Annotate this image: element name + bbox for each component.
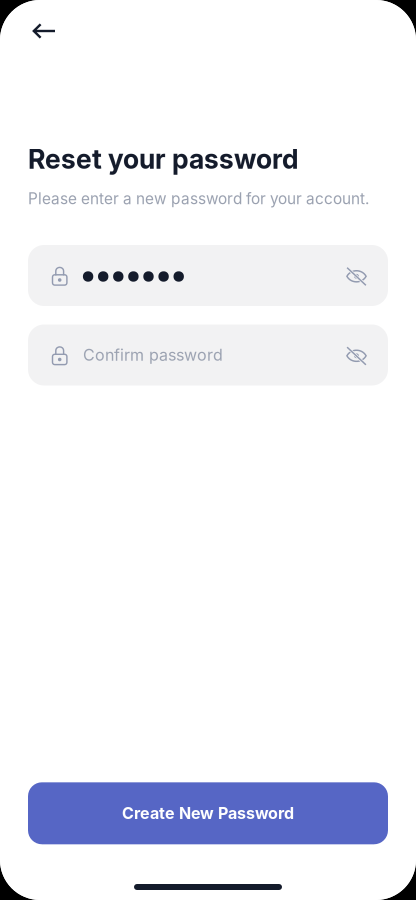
staticText: Please enter a new password for your acc…: [28, 189, 369, 208]
button[interactable]: Confirm password: [28, 324, 388, 385]
staticText: Reset your password: [28, 143, 299, 175]
button[interactable]: New password: [28, 245, 388, 306]
button[interactable]: Show confirm password: [334, 334, 378, 378]
button[interactable]: Back: [21, 9, 67, 53]
staticText: Confirm password: [83, 345, 223, 365]
staticText: Create New Password: [122, 804, 294, 823]
button[interactable]: Show password: [334, 254, 378, 298]
button[interactable]: Create New Password: [28, 782, 388, 844]
